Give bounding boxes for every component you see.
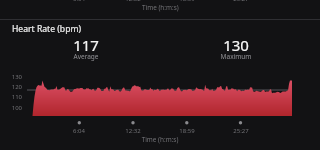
staticText: 6:04 xyxy=(71,0,87,3)
staticText: 100 xyxy=(4,104,22,112)
staticText: 25:27 xyxy=(221,127,261,135)
staticText: Average xyxy=(26,52,146,61)
staticText: 110 xyxy=(4,93,22,101)
staticText: 130 xyxy=(4,73,22,81)
staticText: 117 xyxy=(26,35,146,55)
staticText: 25:27 xyxy=(231,0,251,3)
staticText: Maximum xyxy=(176,52,296,61)
staticText: Time (h:m:s) xyxy=(0,135,320,144)
staticText: 12:32 xyxy=(113,127,153,135)
button[interactable]: 117 xyxy=(26,35,146,61)
staticText: 18:59 xyxy=(177,0,197,3)
staticText: 120 xyxy=(4,83,22,91)
staticText: 18:59 xyxy=(167,127,207,135)
staticText: 12:32 xyxy=(123,0,143,3)
button[interactable]: Heart Rate (bpm) xyxy=(12,23,82,35)
staticText: 6:04 xyxy=(59,127,99,135)
staticText: Time (h:m:s) xyxy=(142,3,179,12)
staticText: 130 xyxy=(176,35,296,55)
button[interactable]: 130 xyxy=(176,35,296,61)
